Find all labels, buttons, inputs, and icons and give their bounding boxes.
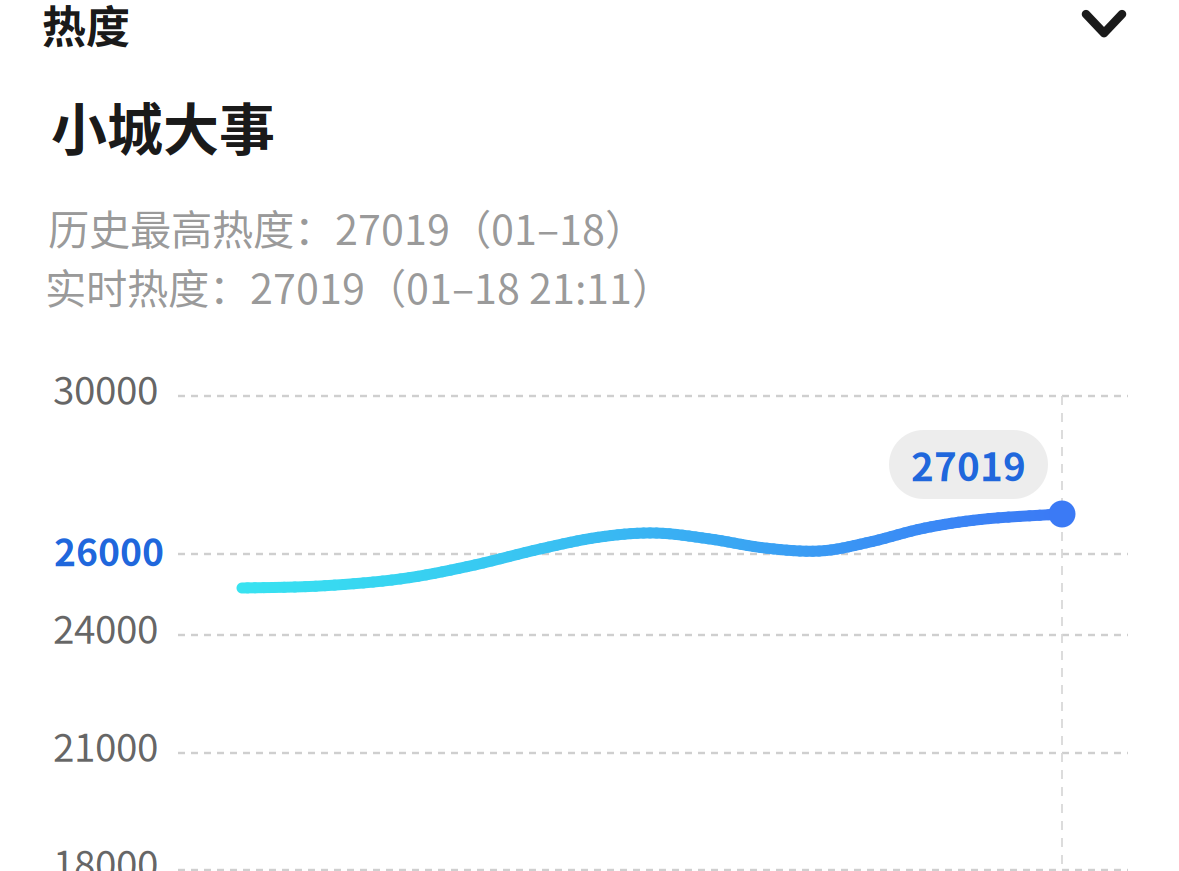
button[interactable]: 热度 — collapse [0,0,1179,62]
staticText: 24000 [53,599,158,655]
staticText: 历史最高热度：27019（01–18） [48,197,646,257]
staticText: 小城大事 [51,85,275,166]
staticText: 30000 [53,360,158,416]
button[interactable]: 27019 [889,430,1048,499]
staticText: 实时热度：27019（01–18 21:11） [45,256,673,316]
staticText: 21000 [53,717,158,773]
staticText: 热度 [42,0,130,56]
staticText: 27019 [911,436,1026,492]
staticText: 18000 [53,834,158,871]
button[interactable]: 小城大事 [0,85,1179,177]
staticText: 26000 [54,523,164,577]
